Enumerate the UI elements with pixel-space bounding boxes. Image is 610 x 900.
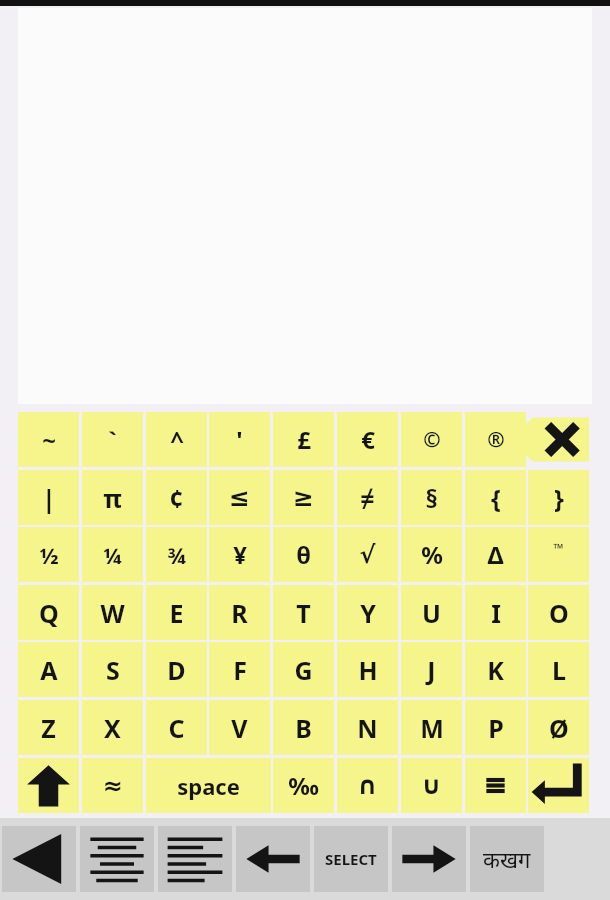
button[interactable]: {: [465, 470, 526, 525]
staticText: K: [487, 653, 504, 687]
staticText: SELECT: [325, 849, 377, 869]
button[interactable]: §: [401, 470, 462, 525]
button[interactable]: Q: [18, 585, 79, 640]
button[interactable]: G: [273, 642, 334, 697]
button[interactable]: ©: [401, 412, 462, 467]
staticText: ': [236, 423, 243, 456]
button[interactable]: Enter: [528, 758, 589, 813]
button[interactable]: ^: [146, 412, 207, 467]
button[interactable]: R: [209, 585, 270, 640]
button[interactable]: √: [337, 527, 398, 582]
staticText: ∪: [421, 771, 442, 800]
button[interactable]: ™: [528, 527, 589, 582]
button[interactable]: Ø: [528, 700, 589, 755]
button[interactable]: U: [401, 585, 462, 640]
button[interactable]: F: [209, 642, 270, 697]
button[interactable]: A: [18, 642, 79, 697]
staticText: ≠: [360, 481, 375, 515]
button[interactable]: J: [401, 642, 462, 697]
staticText: space: [177, 771, 240, 801]
staticText: √: [359, 541, 376, 569]
button[interactable]: कखग: [470, 826, 544, 892]
staticText: Z: [41, 711, 56, 745]
button[interactable]: Z: [18, 700, 79, 755]
button[interactable]: S: [82, 642, 143, 697]
staticText: ^: [170, 423, 184, 456]
button[interactable]: ¥: [209, 527, 270, 582]
staticText: §: [425, 481, 438, 515]
button[interactable]: H: [337, 642, 398, 697]
button[interactable]: ∪: [401, 758, 462, 813]
button[interactable]: £: [273, 412, 334, 467]
staticText: Ø: [549, 711, 569, 745]
staticText: Δ: [487, 538, 504, 571]
staticText: ¾: [167, 540, 186, 570]
button[interactable]: E: [146, 585, 207, 640]
button[interactable]: B: [273, 700, 334, 755]
staticText: ¥: [233, 538, 247, 571]
staticText: ¢: [169, 481, 184, 515]
button[interactable]: ½: [18, 527, 79, 582]
staticText: ∩: [357, 771, 378, 800]
staticText: E: [169, 596, 184, 630]
button[interactable]: T: [273, 585, 334, 640]
button[interactable]: ¢: [146, 470, 207, 525]
button[interactable]: C: [146, 700, 207, 755]
button[interactable]: Back: [2, 826, 76, 892]
button[interactable]: ~: [18, 412, 79, 467]
staticText: %: [421, 538, 443, 571]
button[interactable]: I: [465, 585, 526, 640]
button[interactable]: }: [528, 470, 589, 525]
button[interactable]: ‰: [273, 758, 334, 813]
button[interactable]: ∩: [337, 758, 398, 813]
button[interactable]: %: [401, 527, 462, 582]
button[interactable]: θ: [273, 527, 334, 582]
button[interactable]: ¼: [82, 527, 143, 582]
staticText: O: [549, 596, 569, 630]
button[interactable]: P: [465, 700, 526, 755]
button[interactable]: Move right: [392, 826, 466, 892]
button[interactable]: Menu: [465, 758, 526, 813]
staticText: कखग: [483, 844, 531, 874]
button[interactable]: SELECT: [314, 826, 388, 892]
button[interactable]: Align center: [80, 826, 154, 892]
button[interactable]: Y: [337, 585, 398, 640]
staticText: H: [358, 653, 378, 687]
staticText: |: [42, 481, 56, 515]
button[interactable]: W: [82, 585, 143, 640]
button[interactable]: L: [528, 642, 589, 697]
button[interactable]: ≤: [209, 470, 270, 525]
button[interactable]: V: [209, 700, 270, 755]
staticText: U: [422, 596, 441, 630]
button[interactable]: €: [337, 412, 398, 467]
button[interactable]: Shift: [18, 758, 79, 813]
button[interactable]: space: [146, 758, 271, 813]
button[interactable]: ≈: [82, 758, 143, 813]
button[interactable]: O: [528, 585, 589, 640]
button[interactable]: M: [401, 700, 462, 755]
button[interactable]: ®: [465, 412, 526, 467]
button[interactable]: ≠: [337, 470, 398, 525]
staticText: ≥: [293, 483, 314, 512]
button[interactable]: `: [82, 412, 143, 467]
staticText: Q: [39, 596, 59, 630]
button[interactable]: X: [82, 700, 143, 755]
button[interactable]: ≥: [273, 470, 334, 525]
button[interactable]: Move left: [236, 826, 310, 892]
staticText: L: [552, 653, 566, 687]
button[interactable]: |: [18, 470, 79, 525]
button[interactable]: K: [465, 642, 526, 697]
staticText: C: [168, 711, 185, 745]
button[interactable]: Δ: [465, 527, 526, 582]
staticText: π: [103, 481, 122, 515]
button[interactable]: ': [209, 412, 270, 467]
button[interactable]: Align left: [158, 826, 232, 892]
button[interactable]: ¾: [146, 527, 207, 582]
button[interactable]: Backspace: [528, 412, 589, 467]
staticText: A: [40, 653, 58, 687]
button[interactable]: D: [146, 642, 207, 697]
button[interactable]: N: [337, 700, 398, 755]
staticText: B: [295, 711, 312, 745]
button[interactable]: π: [82, 470, 143, 525]
